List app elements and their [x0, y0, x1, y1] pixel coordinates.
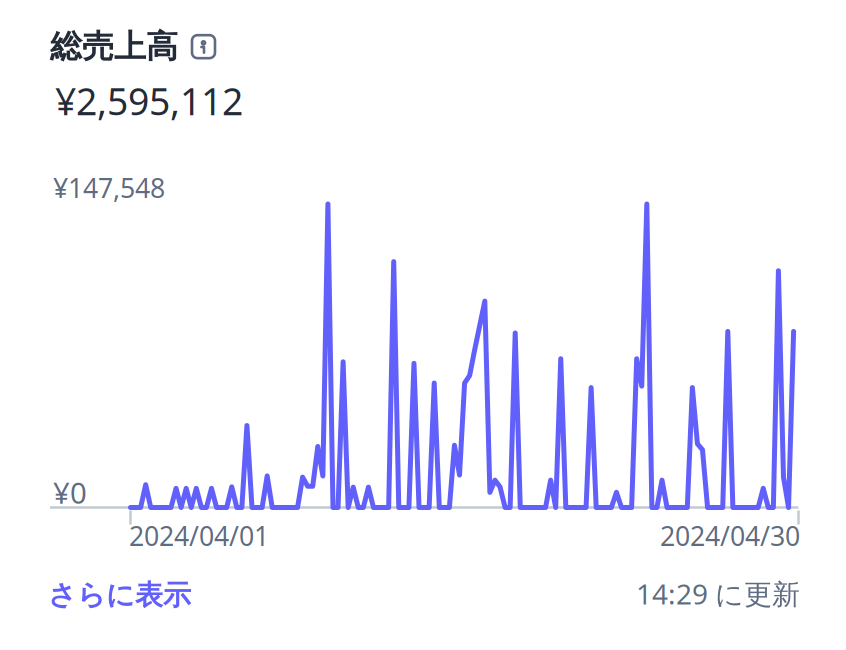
- staticText: ¥147,548: [53, 170, 165, 205]
- staticText: 14:29 に更新: [636, 575, 800, 612]
- staticText: ¥2,595,112: [55, 76, 243, 126]
- staticText: ¥0: [53, 473, 87, 512]
- button[interactable]: 総売上高の説明: [192, 35, 215, 58]
- staticText: さらに表示: [48, 578, 191, 612]
- staticText: 2024/04/30: [660, 518, 800, 553]
- button[interactable]: さらに表示: [48, 578, 191, 612]
- staticText: 2024/04/01: [129, 518, 269, 553]
- staticText: 総売上高: [50, 27, 178, 66]
